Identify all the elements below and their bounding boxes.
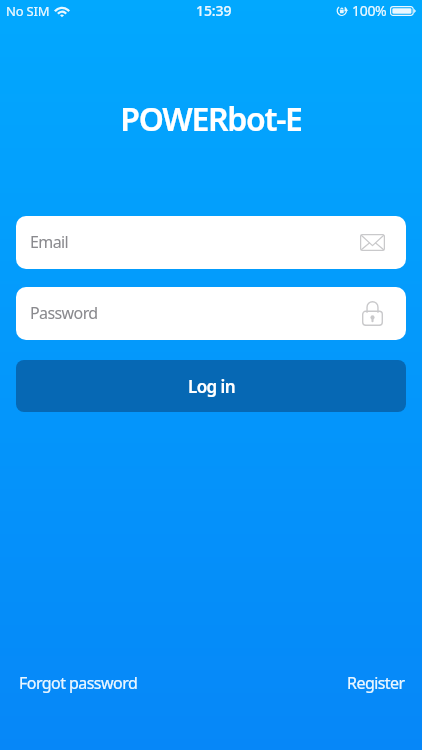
staticText: Log in bbox=[188, 375, 235, 398]
button[interactable]: Log in bbox=[16, 360, 406, 412]
staticText: POWERbot-E bbox=[0, 97, 422, 141]
button[interactable]: Forgot password bbox=[0, 672, 138, 694]
staticText: 100% bbox=[352, 1, 387, 20]
staticText: Forgot password bbox=[19, 672, 138, 694]
button[interactable]: Email bbox=[16, 216, 406, 269]
staticText: Email bbox=[30, 231, 69, 253]
staticText: Password bbox=[30, 302, 98, 324]
button[interactable]: Password bbox=[16, 287, 406, 340]
staticText: 15:39 bbox=[196, 1, 232, 20]
button[interactable]: Register bbox=[347, 672, 422, 694]
staticText: Register bbox=[347, 672, 405, 694]
staticText: No SIM bbox=[6, 2, 50, 20]
